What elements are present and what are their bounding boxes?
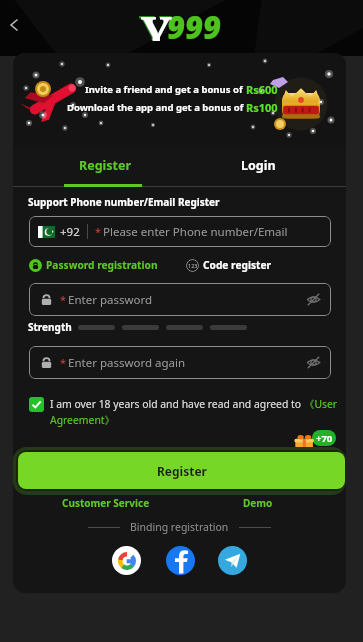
staticText: * [60,355,67,370]
button[interactable]: Show password [306,292,321,307]
staticText: * [95,224,102,239]
button[interactable]: Login [188,145,328,185]
staticText: Enter password [68,292,153,308]
staticText: I am over 18 years old and have read and… [50,397,304,411]
button[interactable]: * [29,346,331,379]
staticText: Rs100 [246,100,278,115]
staticText: Password registration [46,258,158,272]
staticText: Rs600 [246,82,278,97]
staticText: Download the app and get a bonus of [67,101,246,114]
staticText: Customer Service [62,496,150,510]
staticText: 123 [188,262,198,269]
button[interactable]: Demo [243,496,273,510]
button[interactable]: * [29,283,331,316]
staticText: 《User [304,397,338,411]
button[interactable]: 123 [186,258,272,272]
button[interactable]: Customer Service [62,496,150,510]
staticText: Please enter Phone number/Email [103,224,288,240]
staticText: Invite a friend and get a bonus of [85,83,246,96]
button[interactable]: Register [18,452,345,489]
staticText: Support Phone number/Email Register [28,195,220,209]
staticText: * [60,292,67,307]
staticText: +92 [60,224,80,240]
staticText: Strength [28,320,72,334]
button[interactable]: Register [33,145,177,185]
button[interactable]: Sign in with Facebook [166,546,195,575]
staticText: Register [79,157,132,174]
button[interactable]: Show password [306,355,321,370]
button[interactable]: +92 [29,216,331,247]
staticText: Login [241,157,276,174]
button[interactable]: Password registration [29,258,158,272]
staticText: Agreement》 [50,413,115,427]
button[interactable]: Back [0,9,31,40]
staticText: Demo [243,496,273,510]
button[interactable]: I am over 18 checkbox [29,397,44,412]
staticText: Y [141,1,172,41]
staticText: +70 [316,432,333,445]
button[interactable]: Sign in with Google [112,546,141,575]
staticText: Binding registration [130,520,229,534]
staticText: Code register [203,258,272,272]
staticText: Enter password again [68,355,186,371]
staticText: Y [139,0,172,40]
button[interactable]: Sign in with Telegram [218,546,247,575]
staticText: 999 [167,6,221,46]
staticText: Register [157,463,207,479]
